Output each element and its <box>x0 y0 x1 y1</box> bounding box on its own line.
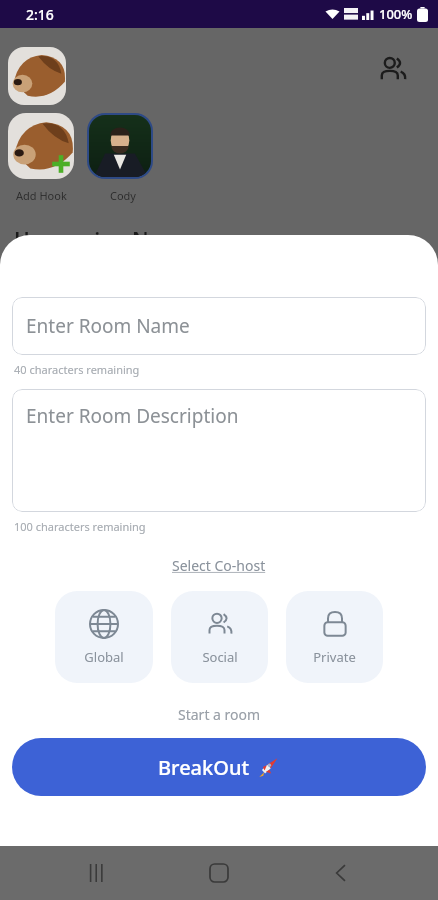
staticText: Add Hook <box>16 188 67 203</box>
staticText: 2:16 <box>26 5 54 24</box>
button[interactable]: Contacts <box>372 48 414 90</box>
staticText: 100 characters remaining <box>14 519 146 534</box>
staticText: 40 characters remaining <box>14 362 140 377</box>
button[interactable]: Back <box>317 849 365 897</box>
staticText: Start a room <box>178 705 261 724</box>
button[interactable]: Enter Room Name <box>12 297 426 355</box>
button[interactable]: Home <box>195 849 243 897</box>
button[interactable]: BreakOut <box>12 738 426 796</box>
button[interactable]: Cody <box>89 115 151 177</box>
staticText: 100% <box>379 5 413 23</box>
button[interactable]: Global <box>55 591 153 683</box>
staticText: Social <box>202 648 238 666</box>
button[interactable]: Recent apps <box>74 849 122 897</box>
staticText: Enter Room Name <box>26 313 190 339</box>
staticText: BreakOut <box>158 754 250 781</box>
button[interactable]: Enter Room Description <box>12 389 426 512</box>
button[interactable]: Social <box>171 591 268 683</box>
button[interactable]: Select Co-host <box>166 554 272 577</box>
staticText: Private <box>313 648 356 666</box>
staticText: Global <box>84 648 124 666</box>
staticText: Cody <box>110 188 136 203</box>
staticText: Happening Now <box>14 226 179 255</box>
button[interactable]: Add Hook <box>8 113 74 179</box>
button[interactable]: Private <box>286 591 383 683</box>
staticText: Enter Room Description <box>26 403 239 429</box>
